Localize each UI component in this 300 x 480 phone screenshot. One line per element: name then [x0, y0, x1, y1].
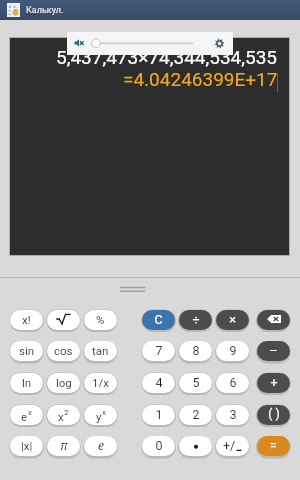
button[interactable]: 5: [179, 373, 212, 393]
button[interactable]: Backspace: [257, 310, 290, 330]
staticText: x: [102, 408, 106, 417]
staticText: cos: [54, 344, 73, 357]
staticText: 3: [229, 407, 237, 422]
staticText: 1/x: [92, 376, 109, 389]
staticText: ÷: [192, 312, 200, 327]
staticText: sin: [19, 344, 35, 357]
staticText: 2: [192, 407, 200, 422]
button[interactable]: ( ): [257, 405, 290, 425]
staticText: ( ): [268, 407, 280, 421]
button[interactable]: 0: [142, 436, 175, 456]
staticText: ln: [22, 376, 32, 389]
button[interactable]: sin: [10, 341, 43, 361]
staticText: ×: [229, 312, 236, 327]
staticText: e: [98, 437, 104, 453]
button[interactable]: Volume: [90, 38, 202, 48]
button[interactable]: log: [47, 373, 80, 393]
button[interactable]: ÷: [179, 310, 212, 330]
button[interactable]: Settings: [214, 38, 225, 49]
button[interactable]: 3: [216, 405, 249, 425]
button[interactable]: =: [257, 436, 290, 456]
button[interactable]: e: [10, 405, 43, 425]
button[interactable]: 9: [216, 341, 249, 361]
button[interactable]: %: [84, 310, 117, 330]
staticText: e: [21, 410, 28, 423]
button[interactable]: x: [47, 405, 80, 425]
staticText: y: [96, 410, 102, 423]
button[interactable]: x!: [10, 310, 43, 330]
staticText: –: [269, 343, 278, 358]
staticText: 6: [229, 375, 237, 390]
staticText: π: [60, 437, 68, 453]
staticText: +/: [223, 438, 236, 453]
staticText: %: [96, 313, 105, 326]
staticText: tan: [92, 344, 109, 357]
button[interactable]: y: [84, 405, 117, 425]
staticText: 7: [155, 343, 163, 358]
button[interactable]: 7: [142, 341, 175, 361]
staticText: 4: [155, 375, 163, 390]
button[interactable]: +: [257, 373, 290, 393]
button[interactable]: 2: [179, 405, 212, 425]
staticText: Калькул.: [26, 5, 64, 16]
button[interactable]: tan: [84, 341, 117, 361]
button[interactable]: [179, 436, 212, 456]
staticText: x: [28, 408, 32, 417]
staticText: 8: [192, 343, 200, 358]
staticText: 0: [155, 438, 163, 453]
button[interactable]: 8: [179, 341, 212, 361]
staticText: =4.04246399E+17: [123, 68, 278, 90]
button[interactable]: 6: [216, 373, 249, 393]
button[interactable]: ln: [10, 373, 43, 393]
staticText: log: [56, 376, 72, 389]
staticText: +: [270, 375, 278, 390]
button[interactable]: cos: [47, 341, 80, 361]
other: Backspace: [267, 315, 281, 323]
button[interactable]: 4: [142, 373, 175, 393]
button[interactable]: Mute: [74, 38, 84, 48]
button[interactable]: e: [84, 436, 117, 456]
staticText: 1: [155, 407, 163, 422]
button[interactable]: +/: [216, 436, 249, 456]
button[interactable]: π: [47, 436, 80, 456]
staticText: 5,437,473×74,344,534,535: [56, 46, 278, 68]
button[interactable]: |x|: [10, 436, 43, 456]
button[interactable]: [47, 310, 80, 330]
staticText: 2: [64, 408, 69, 417]
staticText: 5: [192, 375, 200, 390]
button[interactable]: ×: [216, 310, 249, 330]
staticText: x: [58, 410, 64, 423]
staticText: x!: [22, 313, 31, 326]
button[interactable]: 1: [142, 405, 175, 425]
button[interactable]: 1/x: [84, 373, 117, 393]
staticText: C: [154, 312, 163, 327]
button[interactable]: –: [257, 341, 290, 361]
button[interactable]: C: [142, 310, 175, 330]
staticText: 9: [229, 343, 237, 358]
staticText: |x|: [21, 439, 33, 452]
staticText: =: [270, 438, 277, 453]
